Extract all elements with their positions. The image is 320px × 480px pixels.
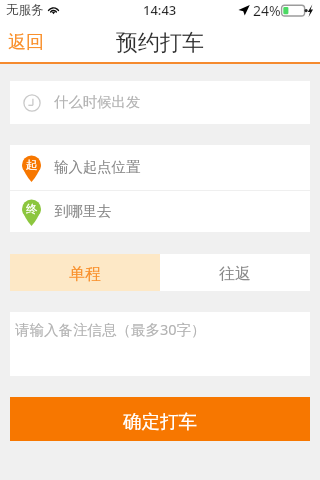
button[interactable]: 返回 [0, 20, 53, 62]
staticText: 24% [253, 1, 281, 20]
staticText: 单程 [69, 264, 101, 284]
staticText: 预约打车 [116, 29, 204, 57]
staticText: 返回 [8, 31, 44, 54]
staticText: 起 [26, 158, 38, 172]
staticText: 请输入备注信息（最多30字） [15, 319, 206, 339]
button[interactable]: 请输入备注信息（最多30字） [10, 312, 310, 376]
button[interactable]: 确定打车 [10, 397, 310, 441]
staticText: 无服务 [6, 2, 44, 18]
button[interactable]: 单程 [10, 254, 160, 291]
button[interactable]: 什么时候出发 [10, 81, 310, 124]
staticText: 什么时候出发 [54, 93, 141, 111]
button[interactable]: 起 [10, 145, 310, 190]
staticText: 到哪里去 [54, 202, 112, 220]
staticText: 往返 [219, 264, 251, 284]
staticText: 终 [26, 202, 38, 216]
button[interactable]: 往返 [160, 254, 310, 291]
button[interactable]: 终 [10, 191, 310, 232]
staticText: 输入起点位置 [54, 158, 141, 176]
staticText: 确定打车 [123, 410, 197, 433]
staticText: 14:43 [143, 1, 177, 19]
